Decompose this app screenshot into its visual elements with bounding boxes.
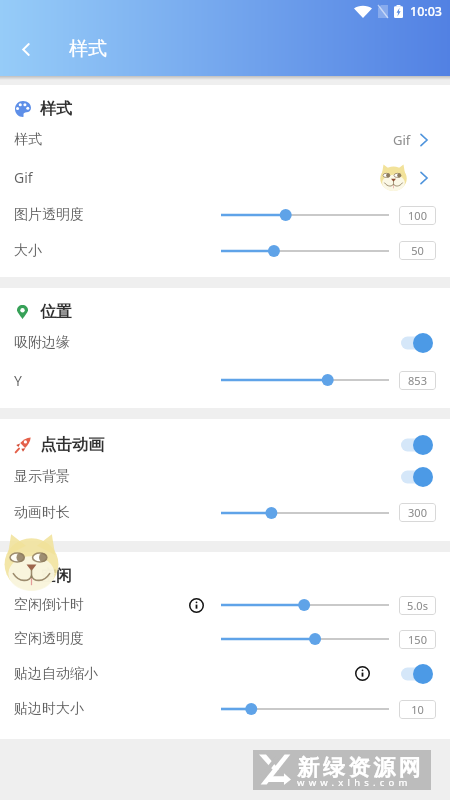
staticText: 10:03 (410, 3, 443, 20)
staticText: 50 (411, 243, 424, 258)
staticText: www.xlhs.com (297, 776, 412, 789)
staticText: 样式 (40, 99, 72, 119)
staticText: 10 (411, 702, 424, 717)
staticText: 贴边自动缩小 (14, 665, 98, 683)
button[interactable]: 显示背景 (0, 459, 450, 495)
button[interactable]: Gif (0, 158, 450, 197)
button[interactable]: Slider (221, 629, 389, 649)
staticText: 空闲倒计时 (14, 596, 84, 614)
button[interactable]: Toggle (401, 662, 433, 686)
staticText: 显示背景 (14, 468, 70, 486)
staticText: 动画时长 (14, 504, 70, 522)
button[interactable]: Slider (221, 370, 389, 390)
staticText: 新绿资源网 (296, 754, 422, 782)
staticText: 5.0s (407, 598, 428, 613)
staticText: 位置 (40, 302, 72, 322)
button[interactable]: 样式 (0, 121, 450, 158)
staticText: Gif (393, 131, 411, 149)
button[interactable]: 吸附边缘 (0, 324, 450, 362)
button[interactable]: Slider (221, 241, 389, 261)
staticText: Gif (14, 168, 33, 187)
staticText: 样式 (69, 37, 107, 61)
staticText: 853 (408, 373, 427, 388)
staticText: 样式 (14, 131, 42, 149)
staticText: 150 (408, 632, 427, 647)
button[interactable]: Slider (221, 503, 389, 523)
button[interactable]: Slider (221, 699, 389, 719)
button[interactable]: 贴边自动缩小 (0, 656, 450, 691)
button[interactable]: Slider (221, 595, 389, 615)
staticText: 大小 (14, 242, 42, 260)
button[interactable]: Toggle (401, 465, 433, 489)
button[interactable]: Slider (221, 205, 389, 225)
staticText: 吸附边缘 (14, 334, 70, 352)
button[interactable]: Toggle (401, 331, 433, 355)
staticText: 点击动画 (40, 435, 104, 455)
button[interactable]: Toggle (401, 433, 433, 457)
staticText: 300 (408, 505, 427, 520)
staticText: 图片透明度 (14, 206, 84, 224)
staticText: 空闲 (40, 566, 72, 586)
button[interactable]: Back (0, 27, 52, 71)
staticText: 100 (408, 208, 427, 223)
staticText: Y (14, 371, 22, 390)
staticText: 贴边时大小 (14, 700, 84, 718)
staticText: 空闲透明度 (14, 630, 84, 648)
